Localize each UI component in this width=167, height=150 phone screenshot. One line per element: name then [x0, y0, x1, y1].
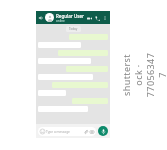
button[interactable]: Back — [38, 15, 44, 21]
button[interactable]: Type a message — [38, 127, 96, 136]
button[interactable]: Attach — [83, 129, 88, 134]
button[interactable]: Send voice message — [98, 126, 108, 136]
staticText: online — [56, 19, 65, 23]
button[interactable]: Camera — [89, 129, 94, 134]
staticText: shutterstock · 770563477 — [119, 51, 167, 98]
staticText: Regular User — [56, 13, 84, 19]
button[interactable]: Regular User — [56, 13, 85, 23]
button[interactable]: Call — [93, 14, 101, 22]
staticText: Type a message — [46, 130, 83, 134]
button[interactable]: More options — [101, 14, 108, 21]
staticText: Today — [69, 27, 78, 31]
button[interactable]: Video call — [85, 14, 93, 22]
button[interactable]: Contact photo — [45, 13, 54, 22]
